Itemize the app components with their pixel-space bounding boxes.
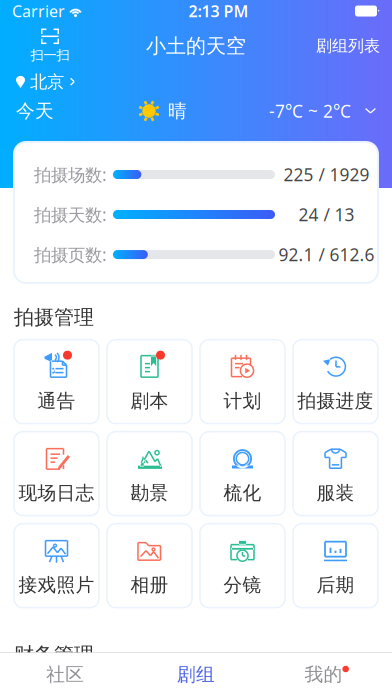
staticText: Carrier [12,0,65,22]
button[interactable]: 剧组 [131,653,261,696]
button[interactable]: 接戏照片 [14,524,99,608]
staticText: 社区 [46,663,84,686]
staticText: 梳化 [223,482,261,505]
button[interactable]: 服装 [293,432,378,516]
button[interactable]: 计划 [200,340,285,424]
button[interactable]: 北京 [0,70,392,94]
staticText: -7°C ~ 2°C [269,99,351,122]
staticText: 接戏照片 [18,574,94,597]
staticText: 剧组列表 [316,36,380,56]
staticText: 92.1 / 612.6 [278,243,374,266]
button[interactable]: 扫一扫 [12,29,88,63]
staticText: 后期 [316,574,354,597]
staticText: 剧组 [177,663,215,686]
staticText: 晴 [168,99,187,122]
button[interactable]: 勘景 [107,432,192,516]
staticText: 拍摄场数: [34,163,107,186]
staticText: 北京 [30,71,64,93]
staticText: 现场日志 [18,482,94,505]
staticText: 225 / 1929 [283,163,369,186]
button[interactable]: 我的 [261,653,392,696]
button[interactable]: 现场日志 [14,432,99,516]
staticText: 小土的天空 [146,34,246,58]
staticText: 拍摄页数: [34,243,107,266]
button[interactable]: 分镜 [200,524,285,608]
staticText: 拍摄进度 [297,390,373,413]
staticText: 今天 [16,99,54,122]
button[interactable]: 剧组列表 [304,36,380,56]
button[interactable]: 剧本 [107,340,192,424]
button[interactable]: 后期 [293,524,378,608]
staticText: 2:13 PM [188,0,248,22]
staticText: 分镜 [223,574,261,597]
staticText: 财务管理 [14,643,94,667]
staticText: 通告 [37,390,75,413]
staticText: 我的 [304,663,342,686]
staticText: 勘景 [130,482,168,505]
staticText: 服装 [316,482,354,505]
staticText: 相册 [130,574,168,597]
button[interactable]: 通告 [14,340,99,424]
button[interactable]: 拍摄进度 [293,340,378,424]
button[interactable]: 相册 [107,524,192,608]
staticText: 计划 [223,390,261,413]
staticText: 扫一扫 [30,47,69,63]
button[interactable]: 梳化 [200,432,285,516]
staticText: 拍摄管理 [14,305,94,330]
button[interactable]: 社区 [0,653,131,696]
staticText: 24 / 13 [298,203,354,226]
staticText: 剧本 [130,390,168,413]
staticText: 拍摄天数: [34,203,107,226]
